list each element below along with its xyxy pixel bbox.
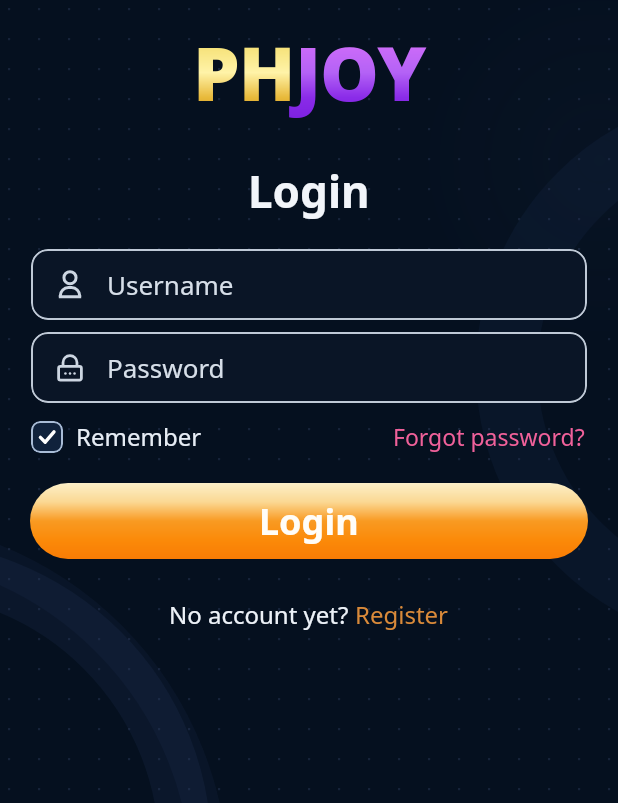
staticText: Forgot password? — [393, 421, 585, 452]
staticText: Password — [107, 350, 225, 385]
button[interactable]: Remember — [31, 420, 208, 453]
staticText: No account yet? — [169, 598, 355, 631]
staticText: Login — [248, 161, 370, 221]
staticText: Login — [259, 497, 359, 546]
other: Password — [53, 351, 87, 385]
staticText: Register — [355, 598, 449, 631]
button[interactable]: Login — [30, 483, 588, 559]
staticText: PH — [193, 22, 295, 123]
staticText: Username — [107, 267, 234, 302]
staticText: JOY — [295, 22, 426, 123]
button[interactable]: Username — [31, 249, 587, 320]
button[interactable]: No account yet? — [163, 594, 455, 635]
button[interactable]: Forgot password? — [391, 417, 587, 456]
staticText: Remember — [76, 420, 202, 453]
button[interactable]: Password — [31, 332, 587, 403]
other: Username — [53, 268, 87, 302]
